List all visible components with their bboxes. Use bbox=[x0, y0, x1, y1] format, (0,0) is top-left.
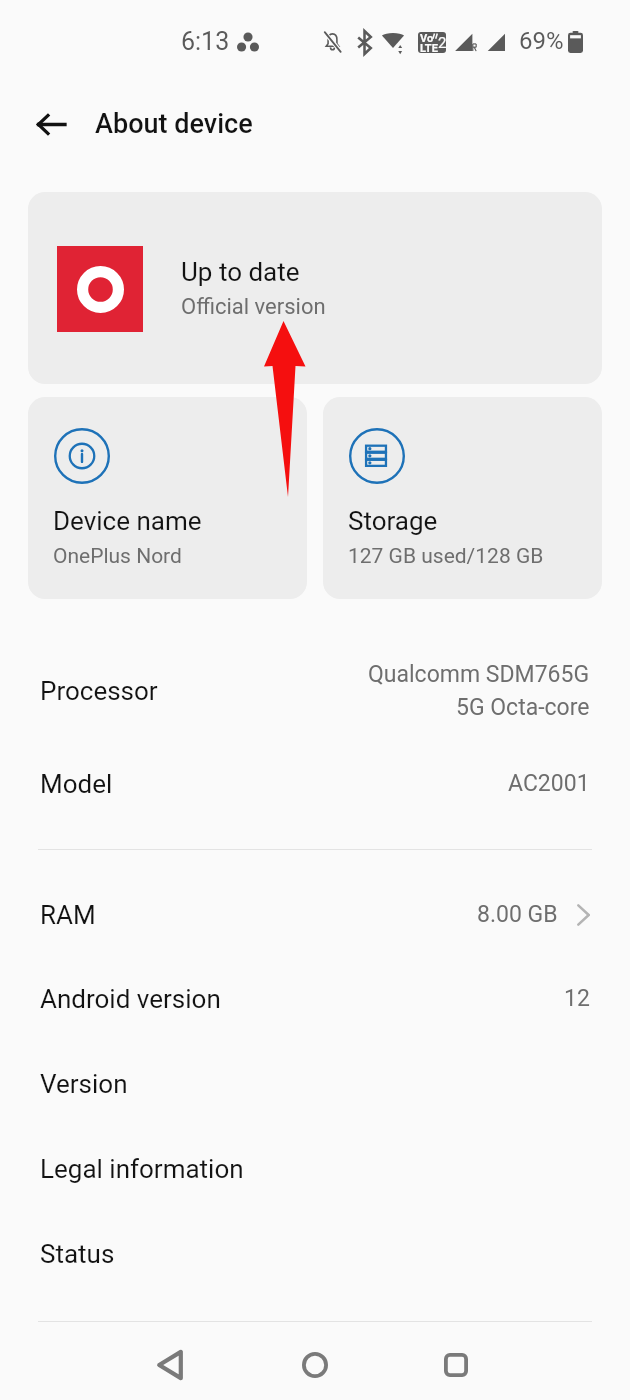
button[interactable]: Recent apps bbox=[426, 1335, 486, 1395]
button[interactable]: Legal information bbox=[0, 1126, 630, 1211]
button[interactable]: Android version bbox=[0, 956, 630, 1041]
staticText: Version bbox=[40, 1069, 128, 1099]
staticText: RAM bbox=[40, 900, 96, 930]
button[interactable]: Processor bbox=[0, 652, 630, 729]
staticText: Qualcomm SDM765G bbox=[368, 661, 590, 688]
staticText: OnePlus Nord bbox=[53, 544, 182, 569]
staticText: Android version bbox=[40, 984, 221, 1014]
button[interactable]: Device name bbox=[28, 397, 307, 599]
staticText: Device name bbox=[53, 506, 202, 536]
staticText: 12 bbox=[564, 985, 590, 1012]
staticText: 6:13 bbox=[181, 27, 230, 56]
button[interactable]: Storage bbox=[323, 397, 602, 599]
button[interactable]: Home bbox=[285, 1335, 345, 1395]
staticText: 8.00 GB bbox=[477, 901, 558, 928]
staticText: 2 bbox=[438, 34, 446, 52]
staticText: AC2001 bbox=[508, 770, 590, 797]
staticText: Vo bbox=[420, 32, 434, 45]
staticText: 69% bbox=[519, 27, 564, 55]
staticText: 5G Octa-core bbox=[456, 694, 590, 721]
button[interactable]: RAM bbox=[0, 872, 630, 957]
button[interactable]: Up to date bbox=[28, 192, 602, 384]
button[interactable]: Status bbox=[0, 1211, 630, 1296]
staticText: Processor bbox=[40, 676, 158, 706]
button[interactable]: Model bbox=[0, 741, 630, 826]
staticText: 127 GB used/128 GB bbox=[348, 544, 544, 569]
staticText: Official version bbox=[181, 294, 326, 320]
staticText: About device bbox=[95, 108, 253, 140]
button[interactable]: Navigate up bbox=[26, 99, 76, 149]
button[interactable]: Version bbox=[0, 1041, 630, 1126]
staticText: Status bbox=[40, 1239, 115, 1269]
staticText: Storage bbox=[348, 506, 438, 536]
staticText: Up to date bbox=[181, 257, 300, 287]
staticText: Legal information bbox=[40, 1154, 244, 1184]
staticText: LTE bbox=[420, 42, 438, 53]
button[interactable]: Back bbox=[140, 1335, 200, 1395]
staticText: Model bbox=[40, 769, 113, 799]
